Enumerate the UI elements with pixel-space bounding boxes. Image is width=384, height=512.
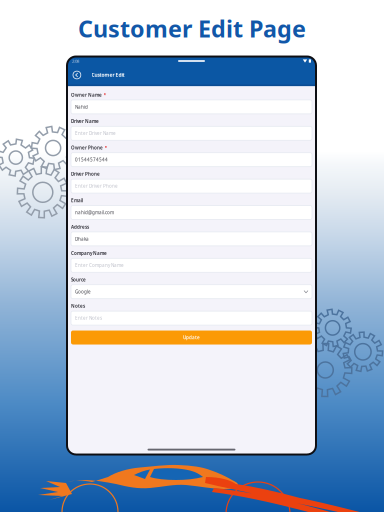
- staticText: Address: [71, 224, 89, 230]
- staticText: Enter Driver Phone: [75, 183, 118, 189]
- staticText: Enter Driver Name: [75, 130, 116, 136]
- staticText: *: [103, 92, 106, 98]
- staticText: Notes: [71, 303, 85, 309]
- staticText: Source: [71, 277, 86, 283]
- staticText: nahid@gmail.com: [75, 209, 114, 216]
- staticText: Update: [183, 334, 200, 341]
- staticText: Owner Phone: [71, 145, 103, 151]
- staticText: Google: [75, 289, 91, 295]
- staticText: Driver Name: [71, 118, 99, 124]
- staticText: 2:08: [72, 58, 79, 64]
- staticText: Customer Edit Page: [78, 13, 306, 44]
- staticText: 01544574544: [75, 157, 108, 163]
- staticText: Nahid: [75, 104, 88, 110]
- staticText: Company Name: [71, 250, 107, 256]
- staticText: Owner Name: [71, 92, 102, 98]
- staticText: Enter Notes: [75, 315, 102, 321]
- staticText: *: [104, 144, 107, 151]
- button[interactable]: Update: [71, 330, 312, 344]
- staticText: Email: [71, 197, 83, 204]
- staticText: Customer Edit: [92, 72, 125, 78]
- button[interactable]: Back: [70, 68, 83, 81]
- staticText: Driver Phone: [71, 171, 100, 177]
- staticText: Enter Company Name: [75, 262, 124, 268]
- staticText: Dhaka: [75, 236, 89, 242]
